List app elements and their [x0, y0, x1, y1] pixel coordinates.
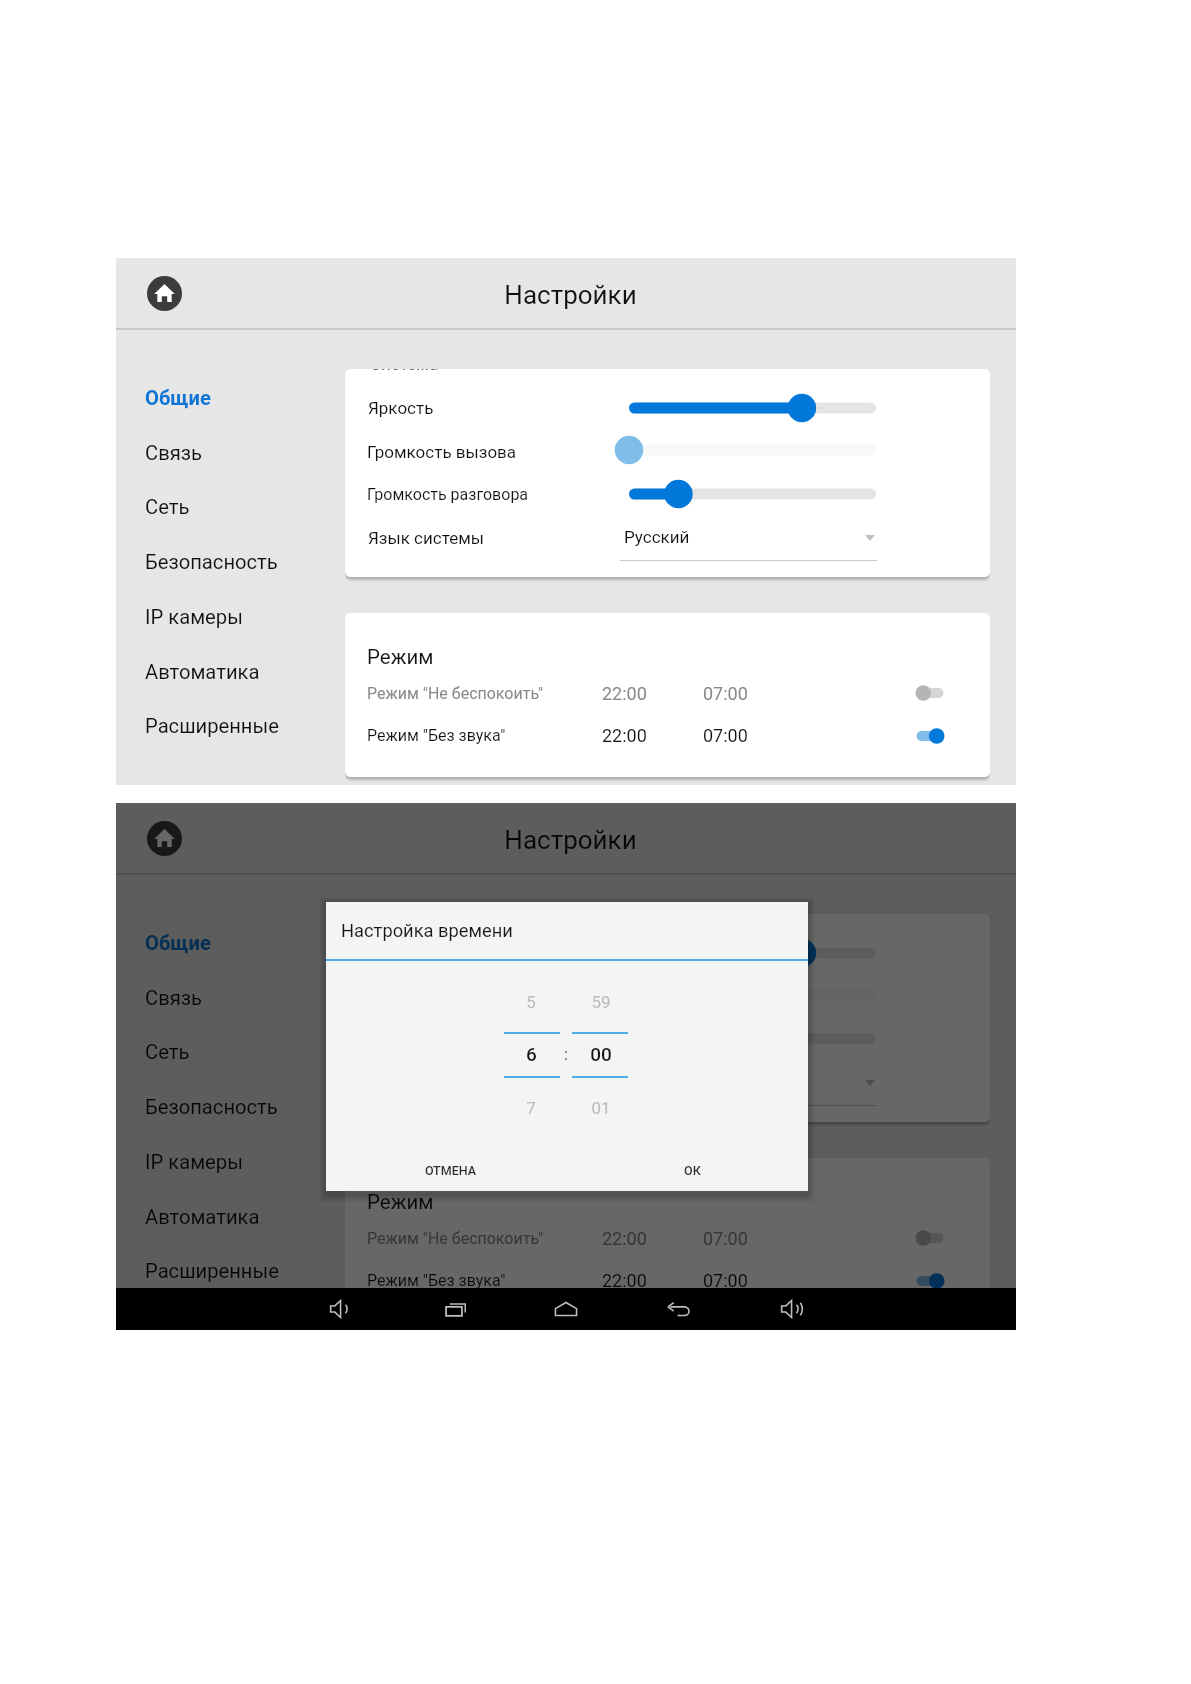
staticText: Режим — [367, 645, 434, 669]
staticText: 07:00 — [703, 683, 748, 704]
staticText: Яркость — [368, 398, 434, 418]
staticText: Режим "Не беспокоить" — [367, 684, 544, 703]
staticText: Расширенные — [145, 714, 279, 738]
button[interactable]: Безопасность — [116, 535, 345, 589]
staticText: Безопасность — [145, 550, 278, 574]
staticText: Яркость — [368, 943, 434, 963]
button[interactable]: Home — [147, 276, 182, 311]
staticText: ОТМЕНА — [425, 1163, 477, 1178]
staticText: 6 — [526, 1043, 537, 1065]
staticText: 00 — [590, 1043, 612, 1065]
staticText: 07:00 — [703, 1270, 748, 1291]
button[interactable]: Автоматика — [116, 645, 345, 699]
staticText: Безопасность — [145, 1095, 278, 1119]
staticText: Громкость вызова — [367, 442, 517, 462]
staticText: Настройки — [504, 825, 637, 855]
button[interactable]: Back — [658, 1288, 700, 1330]
button[interactable]: Home — [545, 1288, 587, 1330]
button[interactable]: ОТМЕНА — [401, 1148, 501, 1192]
staticText: Режим — [367, 1190, 434, 1214]
button[interactable]: Автоматика — [116, 1190, 345, 1244]
button[interactable]: Recent apps — [435, 1288, 477, 1330]
staticText: Система — [370, 899, 439, 919]
staticText: 01 — [591, 1098, 611, 1118]
button[interactable]: Volume up — [771, 1288, 813, 1330]
button[interactable]: IP камеры — [116, 590, 345, 644]
button[interactable]: Toggle off — [906, 679, 954, 707]
button[interactable]: Home — [147, 821, 182, 856]
button[interactable]: Общие — [116, 916, 345, 970]
staticText: Настройка времени — [341, 920, 513, 941]
staticText: Громкость разговора — [367, 1030, 529, 1049]
button[interactable]: Безопасность — [116, 1080, 345, 1134]
staticText: Режим "Не беспокоить" — [367, 1229, 544, 1248]
staticText: Режим "Без звука" — [367, 1271, 506, 1290]
staticText: Язык системы — [368, 528, 485, 548]
button[interactable]: Volume down — [320, 1288, 362, 1330]
button[interactable]: Расширенные — [116, 699, 345, 753]
staticText: Автоматика — [145, 1205, 260, 1229]
staticText: 22:00 — [602, 683, 647, 704]
staticText: 07:00 — [703, 1228, 748, 1249]
button[interactable]: Toggle on — [906, 722, 954, 750]
staticText: Русский — [624, 527, 690, 547]
staticText: Расширенные — [145, 1259, 279, 1283]
button[interactable]: Сеть — [116, 1025, 345, 1079]
staticText: Русский — [624, 1072, 690, 1092]
button[interactable]: IP камеры — [116, 1135, 345, 1189]
staticText: Система — [370, 354, 439, 374]
button[interactable]: ОК — [652, 1148, 732, 1192]
button[interactable]: Toggle on — [906, 1267, 954, 1295]
button[interactable]: Расширенные — [116, 1244, 345, 1298]
staticText: Настройки — [504, 280, 637, 310]
staticText: ОК — [684, 1163, 701, 1178]
staticText: Связь — [145, 441, 202, 465]
staticText: Режим "Без звука" — [367, 726, 506, 745]
staticText: 22:00 — [602, 1228, 647, 1249]
staticText: Сеть — [145, 1040, 190, 1064]
staticText: 7 — [526, 1098, 536, 1118]
staticText: IP камеры — [145, 1150, 243, 1174]
staticText: 07:00 — [703, 725, 748, 746]
staticText: 22:00 — [602, 725, 647, 746]
staticText: Сеть — [145, 495, 190, 519]
button[interactable]: Сеть — [116, 480, 345, 534]
staticText: 22:00 — [602, 1270, 647, 1291]
button[interactable]: Связь — [116, 426, 345, 480]
staticText: 59 — [591, 992, 611, 1012]
staticText: Общие — [145, 931, 211, 955]
button[interactable]: Toggle off — [906, 1224, 954, 1252]
staticText: Общие — [145, 386, 211, 410]
staticText: Автоматика — [145, 660, 260, 684]
button[interactable]: Общие — [116, 371, 345, 425]
staticText: Связь — [145, 986, 202, 1010]
staticText: Громкость разговора — [367, 485, 529, 504]
staticText: IP камеры — [145, 605, 243, 629]
staticText: : — [564, 1045, 568, 1064]
button[interactable]: Связь — [116, 971, 345, 1025]
staticText: 5 — [526, 992, 536, 1012]
